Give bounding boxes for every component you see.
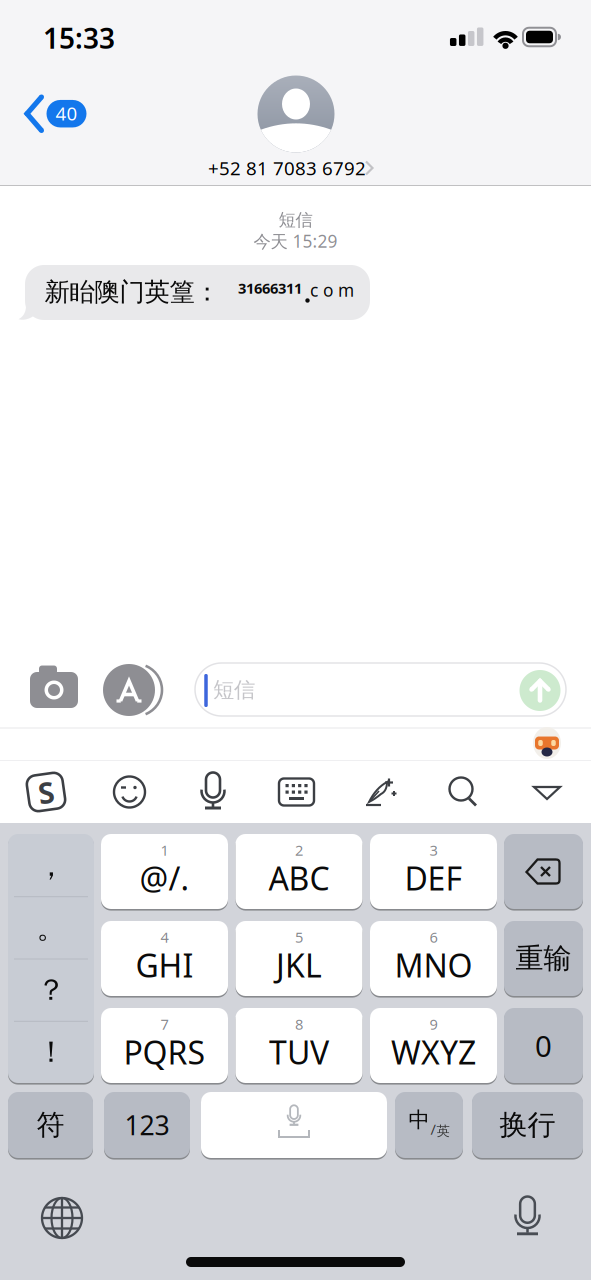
staticText: 短信 bbox=[213, 677, 255, 703]
staticText: 31666311 bbox=[238, 278, 302, 298]
button[interactable]: 6 bbox=[0, 0, 591, 1280]
staticText: ， bbox=[36, 848, 65, 884]
button[interactable]: 5 bbox=[0, 0, 591, 1280]
staticText: 换行 bbox=[499, 1108, 555, 1142]
staticText: 8 bbox=[295, 1014, 303, 1034]
staticText: 7 bbox=[160, 1014, 168, 1034]
button[interactable]: Space bbox=[0, 0, 591, 1280]
staticText: 今天 15:29 bbox=[253, 229, 337, 252]
staticText: DEF bbox=[404, 857, 462, 899]
button[interactable]: 7 bbox=[0, 0, 591, 1280]
button[interactable]: Emoji bbox=[0, 0, 591, 1280]
button[interactable]: 符 bbox=[0, 0, 591, 1280]
staticText: 40 bbox=[55, 101, 77, 126]
staticText: +52 81 7083 6792 bbox=[208, 156, 366, 180]
button[interactable]: 3 bbox=[0, 0, 591, 1280]
button[interactable]: Sticker assistant bbox=[0, 0, 591, 1280]
staticText: 重输 bbox=[515, 941, 571, 976]
staticText: GHI bbox=[135, 944, 193, 986]
button[interactable]: Contact +52 81 7083 6792 bbox=[0, 0, 591, 1280]
button[interactable]: Next keyboard bbox=[0, 0, 591, 1280]
staticText: MNO bbox=[394, 944, 472, 986]
button[interactable]: Search bbox=[0, 0, 591, 1280]
button[interactable]: Back bbox=[0, 0, 591, 1280]
staticText: @/. bbox=[139, 857, 189, 899]
staticText: JKL bbox=[276, 944, 322, 986]
button[interactable]: Delete bbox=[0, 0, 591, 1280]
staticText: PQRS bbox=[123, 1031, 205, 1073]
staticText: S bbox=[38, 772, 54, 811]
staticText: WXYZ bbox=[391, 1031, 476, 1073]
button[interactable]: Text message field bbox=[0, 0, 591, 1280]
button[interactable]: Sogou bbox=[0, 0, 591, 1280]
staticText: ABC bbox=[268, 857, 329, 899]
button[interactable]: Send bbox=[0, 0, 591, 1280]
staticText: / bbox=[430, 1119, 435, 1139]
button[interactable]: Handwriting bbox=[0, 0, 591, 1280]
button[interactable]: ？ bbox=[0, 0, 591, 1280]
button[interactable]: Dictation bbox=[0, 0, 591, 1280]
button[interactable]: 2 bbox=[0, 0, 591, 1280]
button[interactable]: 0 bbox=[0, 0, 591, 1280]
button[interactable]: 换行 bbox=[0, 0, 591, 1280]
button[interactable]: 123 bbox=[0, 0, 591, 1280]
staticText: 4 bbox=[160, 927, 168, 947]
staticText: 短信 bbox=[278, 209, 312, 231]
staticText: ？ bbox=[36, 972, 65, 1008]
staticText: 9 bbox=[429, 1014, 437, 1034]
staticText: 2 bbox=[295, 840, 303, 860]
staticText: 6 bbox=[429, 927, 437, 947]
button[interactable]: Keyboard layout bbox=[0, 0, 591, 1280]
staticText: 5 bbox=[295, 927, 303, 947]
button[interactable]: 8 bbox=[0, 0, 591, 1280]
button[interactable]: 。 bbox=[0, 0, 591, 1280]
button[interactable]: 重输 bbox=[0, 0, 591, 1280]
staticText: 符 bbox=[36, 1108, 64, 1142]
staticText: 3 bbox=[429, 840, 437, 860]
button[interactable]: ， bbox=[0, 0, 591, 1280]
staticText: 。 bbox=[36, 910, 65, 946]
staticText: 1 bbox=[160, 840, 168, 860]
button[interactable]: Hide keyboard bbox=[0, 0, 591, 1280]
button[interactable]: Voice input bbox=[0, 0, 591, 1280]
button[interactable]: 1 bbox=[0, 0, 591, 1280]
staticText: 新眙隩门英篁： bbox=[44, 276, 219, 307]
button[interactable]: Chinese / English bbox=[0, 0, 591, 1280]
staticText: 123 bbox=[124, 1107, 169, 1143]
staticText: 0 bbox=[535, 1026, 552, 1065]
button[interactable]: iMessage apps bbox=[0, 0, 591, 1280]
button[interactable]: 4 bbox=[0, 0, 591, 1280]
button[interactable]: 9 bbox=[0, 0, 591, 1280]
staticText: 中 bbox=[408, 1107, 429, 1133]
button[interactable]: ！ bbox=[0, 0, 591, 1280]
staticText: TUV bbox=[269, 1031, 329, 1073]
staticText: c o m bbox=[310, 278, 354, 301]
staticText: ！ bbox=[36, 1034, 65, 1070]
staticText: 英 bbox=[436, 1123, 449, 1139]
button[interactable]: Camera bbox=[0, 0, 591, 1280]
staticText: 15:33 bbox=[43, 19, 115, 57]
